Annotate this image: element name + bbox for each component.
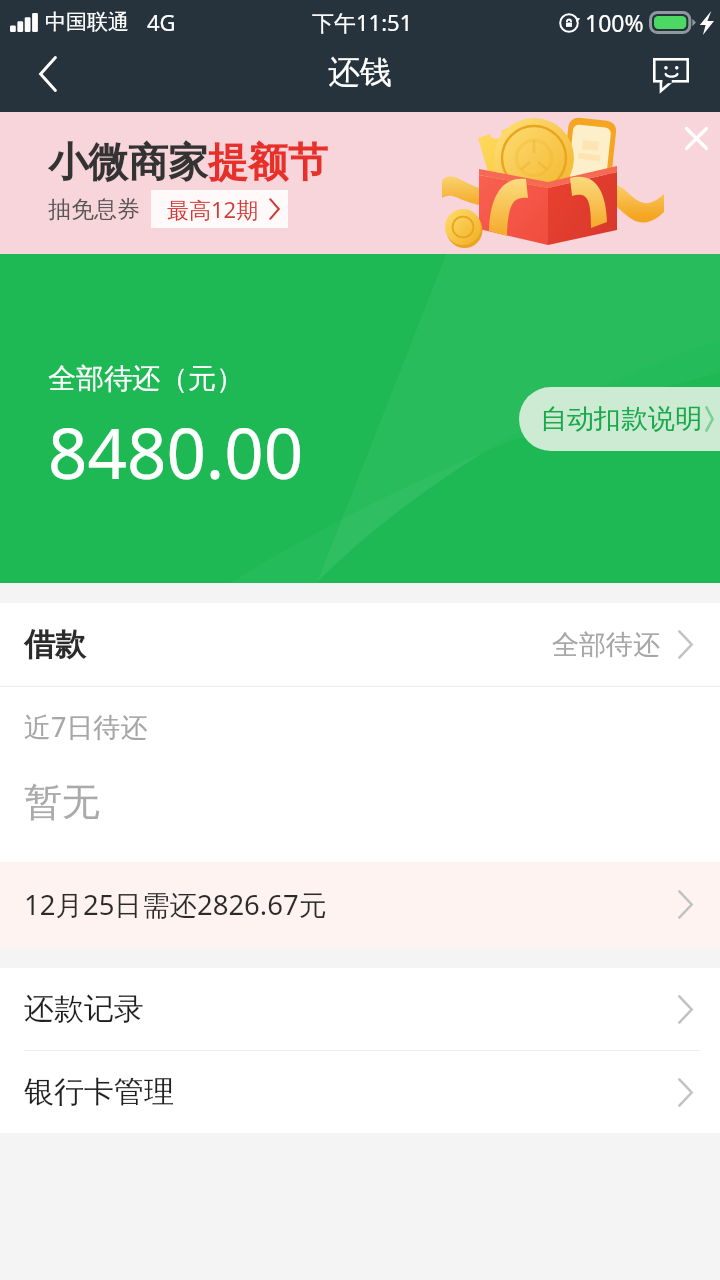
button[interactable]: 12月25日需还2826.67元 <box>0 862 720 947</box>
staticText: 最高12期 <box>167 194 259 224</box>
staticText: 下午11:51 <box>312 7 413 37</box>
staticText: 还款记录 <box>24 990 144 1028</box>
button[interactable]: 最高12期 <box>151 190 288 228</box>
staticText: 4G <box>147 7 176 37</box>
staticText: 借款 <box>24 625 86 664</box>
button[interactable]: 小微商家提额节 <box>0 112 720 254</box>
button[interactable]: 银行卡管理 <box>0 1051 720 1133</box>
button[interactable]: 还款记录 <box>0 968 720 1050</box>
staticText: 抽免息券 <box>48 195 140 224</box>
staticText: 还钱 <box>328 52 392 92</box>
staticText: 100% <box>585 7 644 38</box>
button[interactable]: 自动扣款说明 <box>519 387 720 451</box>
staticText: 银行卡管理 <box>24 1073 174 1111</box>
button[interactable]: Customer service chat <box>622 44 720 112</box>
staticText: 近7日待还 <box>24 708 148 745</box>
staticText: 全部待还 <box>552 628 660 662</box>
button[interactable]: Close banner <box>656 112 720 176</box>
button[interactable]: Back <box>0 44 96 112</box>
staticText: 全部待还（元） <box>48 361 244 396</box>
staticText: 小微商家提额节 <box>48 137 328 187</box>
staticText: 自动扣款说明 <box>540 402 702 436</box>
button[interactable]: 借款 <box>0 603 720 686</box>
staticText: 12月25日需还2826.67元 <box>24 886 327 924</box>
staticText: 暂无 <box>24 778 100 826</box>
staticText: 中国联通 <box>45 9 129 35</box>
staticText: 8480.00 <box>48 405 304 499</box>
